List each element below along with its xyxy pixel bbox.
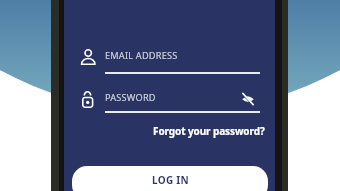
button[interactable]: PASSWORD (74, 86, 264, 115)
staticText: EMAIL ADDRESS (105, 49, 178, 62)
staticText: Forgot your password? (153, 124, 265, 138)
button[interactable] (241, 92, 255, 106)
button[interactable]: Forgot your password? (105, 123, 265, 139)
staticText: LOG IN (152, 173, 189, 187)
staticText: PASSWORD (105, 91, 156, 104)
button[interactable]: LOG IN (72, 166, 268, 191)
button[interactable]: EMAIL ADDRESS (74, 44, 264, 75)
